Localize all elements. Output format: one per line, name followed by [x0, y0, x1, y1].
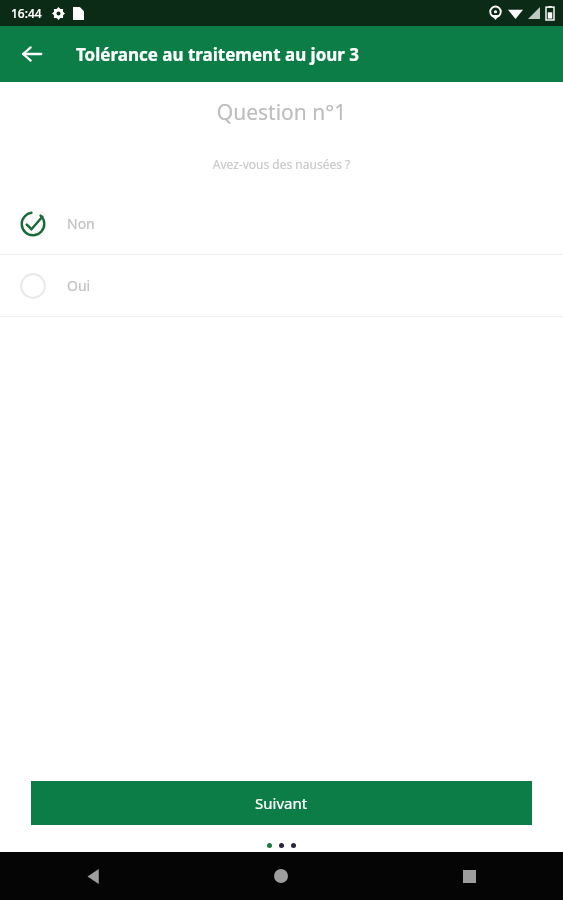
staticText: 16:44: [11, 5, 42, 21]
staticText: Avez-vous des nausées ?: [0, 156, 563, 172]
button[interactable]: Home: [187, 852, 375, 900]
button[interactable]: Back: [10, 32, 54, 76]
staticText: Suivant: [255, 793, 308, 813]
button[interactable]: Recent apps: [375, 852, 563, 900]
button[interactable]: Non: [0, 193, 563, 254]
staticText: Non: [67, 214, 95, 233]
button[interactable]: Suivant: [31, 781, 532, 825]
button[interactable]: Back: [0, 852, 187, 900]
staticText: Question n°1: [0, 98, 563, 127]
staticText: Tolérance au traitement au jour 3: [76, 43, 360, 66]
staticText: Oui: [67, 276, 91, 295]
